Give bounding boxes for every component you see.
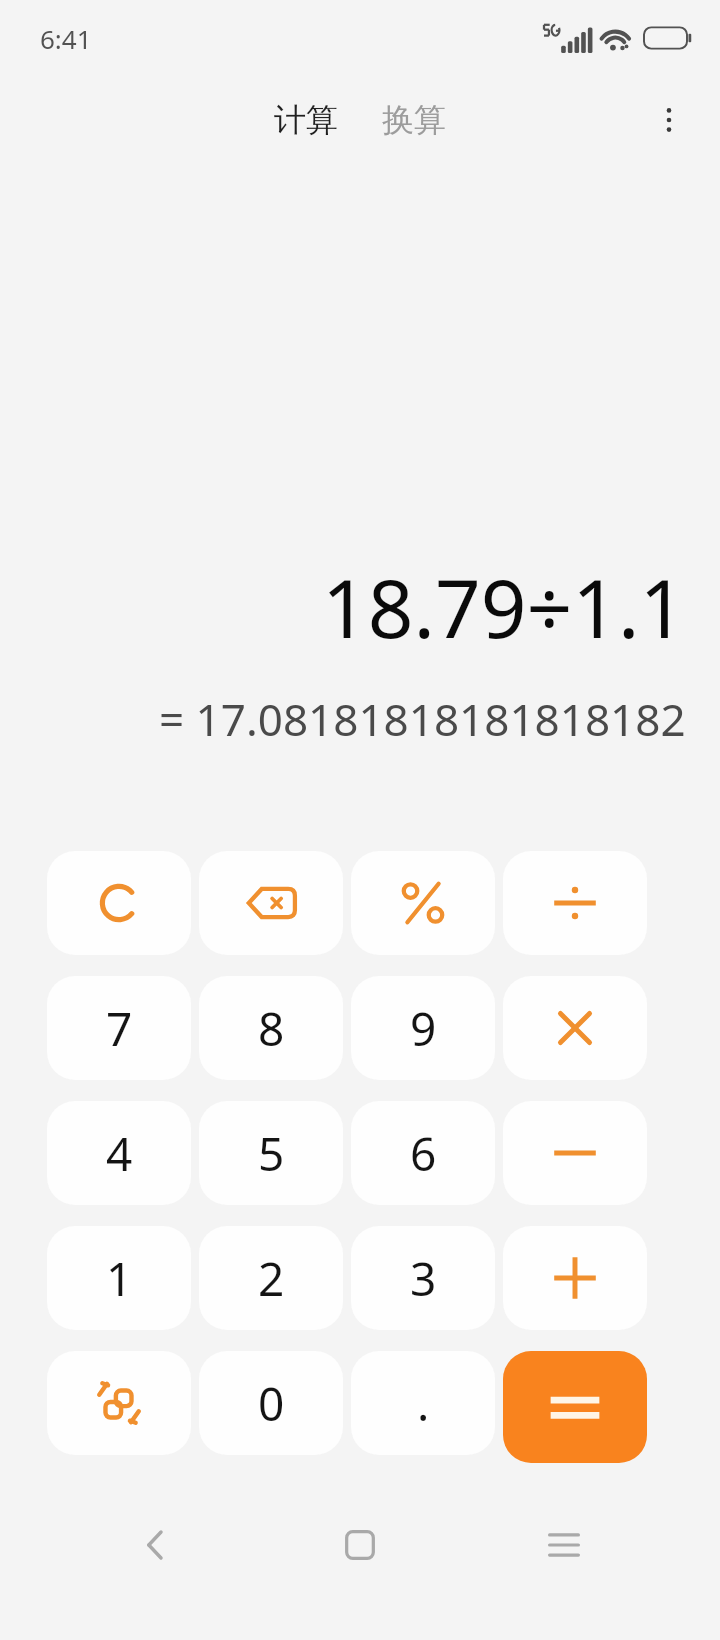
button[interactable]: Minus	[503, 1101, 647, 1205]
button[interactable]: Unit conversion	[47, 1351, 191, 1455]
staticText: 3	[410, 1247, 437, 1310]
button[interactable]: Plus	[503, 1226, 647, 1330]
staticText: 0	[258, 1372, 285, 1435]
button[interactable]: .	[351, 1351, 495, 1455]
staticText: 计算	[274, 100, 338, 140]
staticText: 1	[106, 1247, 133, 1310]
staticText: 6:41	[40, 21, 92, 56]
button[interactable]: 5	[199, 1101, 343, 1205]
button[interactable]: Divide	[503, 851, 647, 955]
button[interactable]: Home	[312, 1497, 408, 1593]
button[interactable]: 换算	[374, 94, 454, 146]
button[interactable]: Equals	[503, 1351, 647, 1463]
staticText: 8	[258, 997, 285, 1060]
staticText: 6	[410, 1122, 437, 1185]
button[interactable]: Percent	[351, 851, 495, 955]
staticText: 换算	[382, 100, 446, 140]
button[interactable]: Recents	[516, 1497, 612, 1593]
button[interactable]: 4	[47, 1101, 191, 1205]
staticText: 18.79÷1.1	[322, 552, 686, 661]
staticText: 2	[258, 1247, 285, 1310]
button[interactable]: Clear	[47, 851, 191, 955]
staticText: = 17.08181818181818182	[159, 689, 686, 749]
staticText: 5	[258, 1122, 285, 1185]
button[interactable]: 计算	[266, 94, 346, 146]
button[interactable]: 1	[47, 1226, 191, 1330]
button[interactable]: Multiply	[503, 976, 647, 1080]
button[interactable]: 8	[199, 976, 343, 1080]
button[interactable]: More options	[638, 89, 700, 151]
button[interactable]: 6	[351, 1101, 495, 1205]
button[interactable]: 3	[351, 1226, 495, 1330]
button[interactable]: 2	[199, 1226, 343, 1330]
staticText: .	[417, 1372, 430, 1435]
button[interactable]: Back	[108, 1497, 204, 1593]
staticText: 9	[410, 997, 437, 1060]
staticText: 7	[106, 997, 133, 1060]
button[interactable]: 9	[351, 976, 495, 1080]
staticText: 4	[106, 1122, 133, 1185]
button[interactable]: 0	[199, 1351, 343, 1455]
button[interactable]: Backspace	[199, 851, 343, 955]
button[interactable]: 7	[47, 976, 191, 1080]
